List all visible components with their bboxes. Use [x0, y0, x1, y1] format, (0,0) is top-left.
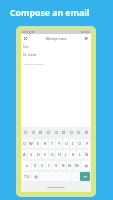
staticText: Agregar un asunto	[23, 62, 45, 65]
button[interactable]: J	[63, 150, 69, 159]
button[interactable]: S	[28, 150, 34, 159]
button[interactable]: F	[42, 150, 48, 159]
staticText: P	[86, 141, 89, 146]
staticText: W	[29, 141, 33, 146]
staticText: D	[37, 152, 40, 157]
button[interactable]: H	[56, 150, 62, 159]
button[interactable]: G	[49, 150, 55, 159]
button[interactable]: ?123	[22, 172, 31, 181]
button[interactable]: Agregar un asunto	[23, 59, 89, 67]
staticText: Y	[58, 141, 61, 146]
button[interactable]: Q	[22, 139, 27, 148]
button[interactable]: Emoji	[32, 172, 39, 181]
staticText: I	[72, 141, 74, 146]
button[interactable]: B	[60, 161, 66, 170]
staticText: V	[55, 163, 58, 168]
button[interactable]: W	[28, 139, 34, 148]
staticText: De ricardo	[23, 53, 37, 57]
staticText: T	[51, 141, 54, 146]
staticText: X	[41, 163, 44, 168]
button[interactable]: V	[53, 161, 59, 170]
button[interactable]: M	[74, 161, 80, 170]
button[interactable]: X	[39, 161, 45, 170]
staticText: Mensaje nuevo	[46, 37, 67, 41]
button[interactable]: D	[35, 150, 41, 159]
button[interactable]: Emoji	[61, 130, 66, 135]
button[interactable]: O	[77, 139, 83, 148]
staticText: J	[65, 152, 67, 157]
staticText: M	[75, 163, 79, 168]
button[interactable]: R	[42, 139, 48, 148]
button[interactable]: Z	[32, 161, 38, 170]
button[interactable]: I	[70, 139, 76, 148]
button[interactable]: Clipboard	[54, 130, 59, 135]
button[interactable]: Google search	[23, 130, 28, 135]
button[interactable]: Translate	[69, 130, 74, 135]
button[interactable]: Backspace	[81, 161, 90, 170]
staticText: B	[62, 163, 65, 168]
staticText: A	[23, 152, 26, 157]
button[interactable]: P	[84, 139, 90, 148]
button[interactable]: C	[46, 161, 52, 170]
button[interactable]: Para	[23, 43, 89, 51]
button[interactable]: Voice	[76, 130, 81, 135]
staticText: F	[44, 152, 47, 157]
button[interactable]: .	[72, 172, 79, 181]
button[interactable]: Send	[84, 36, 89, 41]
staticText: L	[79, 152, 82, 157]
button[interactable]: De ricardo	[23, 51, 89, 59]
button[interactable]: Themes	[31, 130, 36, 135]
button[interactable]: E	[35, 139, 41, 148]
staticText: U	[65, 141, 68, 146]
staticText: G	[51, 152, 54, 157]
button[interactable]: Ñ	[84, 150, 90, 159]
staticText: H	[58, 152, 61, 157]
staticText: C	[48, 163, 51, 168]
staticText: Para	[23, 45, 29, 49]
staticText: S	[30, 152, 33, 157]
staticText: ?123	[24, 175, 30, 179]
staticText: Ñ	[85, 152, 89, 157]
button[interactable]: T	[49, 139, 55, 148]
button[interactable]: N	[67, 161, 73, 170]
button[interactable]: U	[63, 139, 69, 148]
button[interactable]: Close	[23, 36, 28, 41]
button[interactable]: Y	[56, 139, 62, 148]
staticText: R	[44, 141, 47, 146]
button[interactable]: Enter	[80, 172, 90, 181]
button[interactable]: Settings	[84, 130, 89, 135]
button[interactable]: K	[70, 150, 76, 159]
staticText: E	[37, 141, 40, 146]
staticText: K	[72, 152, 75, 157]
staticText: N	[68, 163, 72, 168]
staticText: O	[78, 141, 82, 146]
button[interactable]: Shift	[22, 161, 31, 170]
staticText: Q	[23, 141, 27, 146]
staticText: Z	[34, 163, 37, 168]
staticText: .	[75, 174, 77, 179]
button[interactable]: A	[22, 150, 27, 159]
button[interactable]: GIF	[38, 130, 43, 135]
button[interactable]: L	[77, 150, 83, 159]
button[interactable]: Stickers	[46, 130, 51, 135]
button[interactable]: Compose an email	[10, 7, 90, 19]
